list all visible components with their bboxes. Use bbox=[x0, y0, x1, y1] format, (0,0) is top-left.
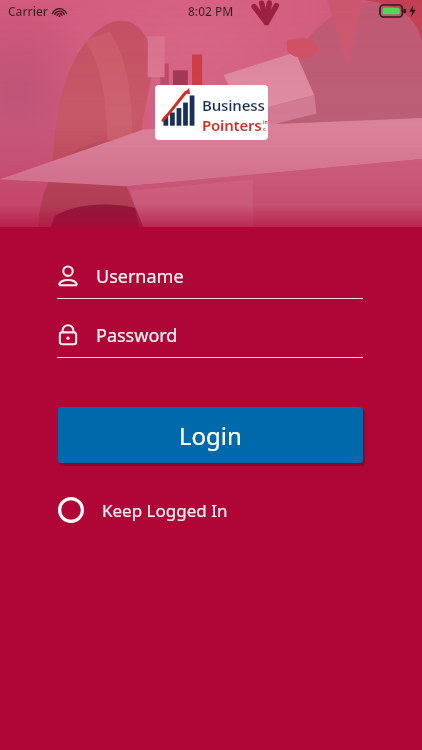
button[interactable]: Password bbox=[50, 318, 363, 358]
button[interactable]: Keep Logged In checkbox bbox=[50, 489, 244, 531]
staticText: Username bbox=[96, 264, 184, 289]
staticText: Keep Logged In bbox=[102, 499, 228, 522]
button[interactable]: Username bbox=[50, 259, 363, 299]
staticText: Carrier bbox=[8, 3, 48, 19]
staticText: Login bbox=[179, 419, 242, 452]
staticText: Password bbox=[96, 323, 178, 348]
button[interactable]: Login bbox=[58, 407, 363, 463]
staticText: Pointers bbox=[202, 115, 262, 135]
staticText: Business bbox=[202, 95, 265, 115]
staticText: inc bbox=[263, 119, 268, 133]
other: Keep Logged In checkbox bbox=[58, 497, 84, 523]
staticText: 8:02 PM bbox=[188, 3, 234, 19]
